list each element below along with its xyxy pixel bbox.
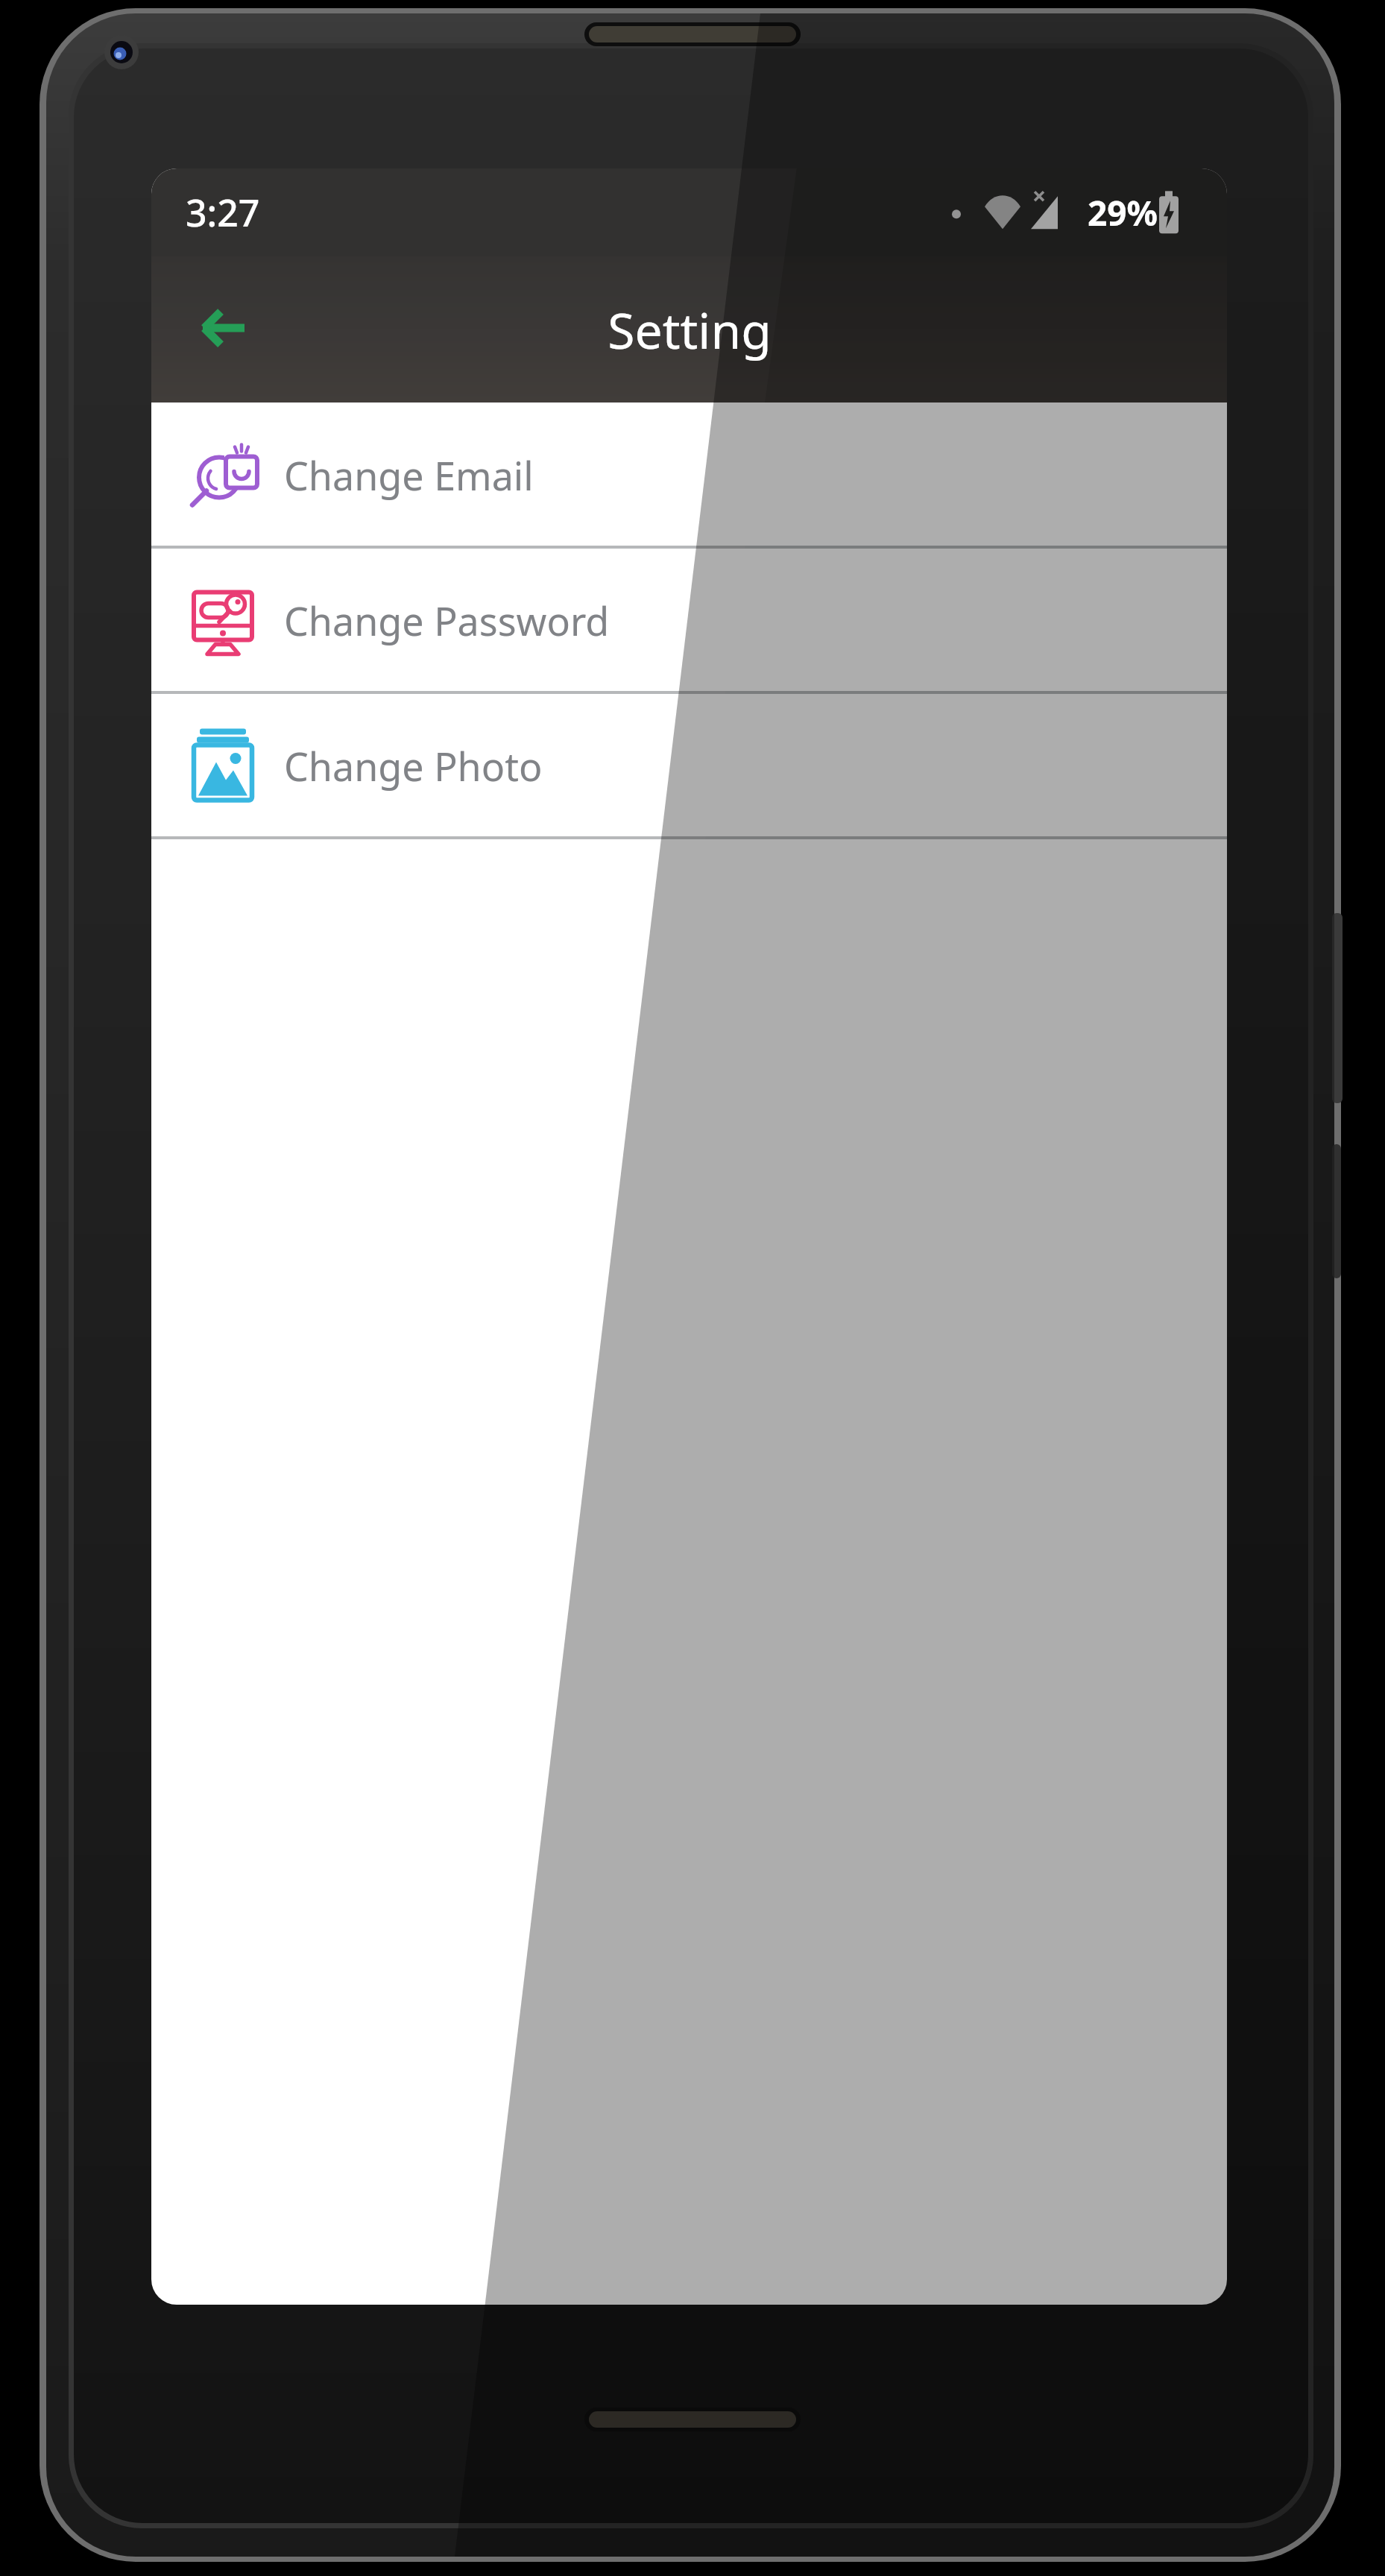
staticText: Change Photo	[284, 739, 543, 792]
button[interactable]: Back	[175, 281, 272, 378]
staticText: Change Password	[284, 594, 610, 647]
button[interactable]: Change Password	[151, 548, 1227, 693]
button[interactable]: Change Email	[151, 402, 1227, 548]
staticText: 3:27	[186, 187, 260, 238]
staticText: Setting	[608, 296, 772, 363]
staticText: 29%	[1088, 189, 1158, 236]
staticText: Change Email	[284, 449, 534, 502]
button[interactable]: Change Photo	[151, 693, 1227, 839]
